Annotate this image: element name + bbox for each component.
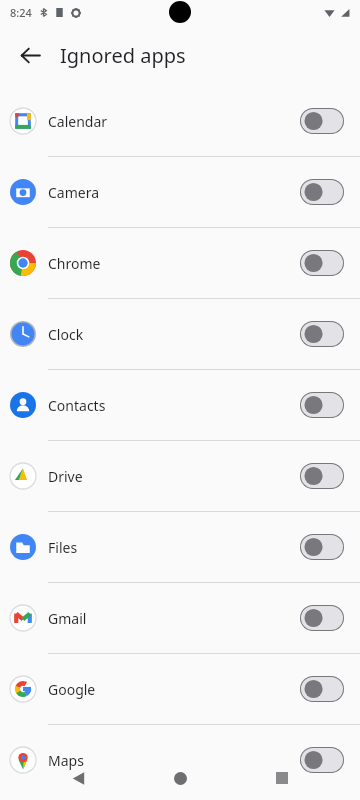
staticText: Ignored apps bbox=[60, 42, 186, 69]
button[interactable]: Toggle bbox=[300, 605, 344, 631]
button[interactable]: Recents bbox=[258, 756, 306, 800]
button[interactable]: Contacts bbox=[0, 370, 360, 440]
button[interactable]: Files bbox=[0, 512, 360, 582]
staticText: Maps bbox=[48, 751, 84, 770]
staticText: Clock bbox=[48, 325, 84, 344]
staticText: Chrome bbox=[48, 254, 101, 273]
staticText: Drive bbox=[48, 467, 83, 486]
staticText: Camera bbox=[48, 183, 100, 202]
button[interactable]: Maps bbox=[0, 725, 360, 795]
staticText: 8:24 bbox=[10, 5, 32, 20]
button[interactable]: Toggle bbox=[300, 321, 344, 347]
button[interactable]: Toggle bbox=[300, 250, 344, 276]
button[interactable]: Toggle bbox=[300, 747, 344, 773]
button[interactable]: Camera bbox=[0, 157, 360, 227]
button[interactable]: Gmail bbox=[0, 583, 360, 653]
button[interactable]: Calendar bbox=[0, 86, 360, 156]
button[interactable]: Google bbox=[0, 654, 360, 724]
button[interactable]: Home bbox=[156, 756, 204, 800]
button[interactable]: Clock bbox=[0, 299, 360, 369]
button[interactable]: Drive bbox=[0, 441, 360, 511]
button[interactable]: Chrome bbox=[0, 228, 360, 298]
button[interactable]: Toggle bbox=[300, 676, 344, 702]
button[interactable]: Toggle bbox=[300, 179, 344, 205]
staticText: Calendar bbox=[48, 112, 108, 131]
button[interactable]: Toggle bbox=[300, 534, 344, 560]
button[interactable]: Back bbox=[54, 756, 102, 800]
staticText: Gmail bbox=[48, 609, 87, 628]
button[interactable]: Toggle bbox=[300, 108, 344, 134]
button[interactable]: Toggle bbox=[300, 392, 344, 418]
button[interactable]: Toggle bbox=[300, 463, 344, 489]
staticText: Files bbox=[48, 538, 78, 557]
button[interactable]: Back bbox=[8, 33, 52, 77]
staticText: Contacts bbox=[48, 396, 106, 415]
staticText: Google bbox=[48, 680, 96, 699]
